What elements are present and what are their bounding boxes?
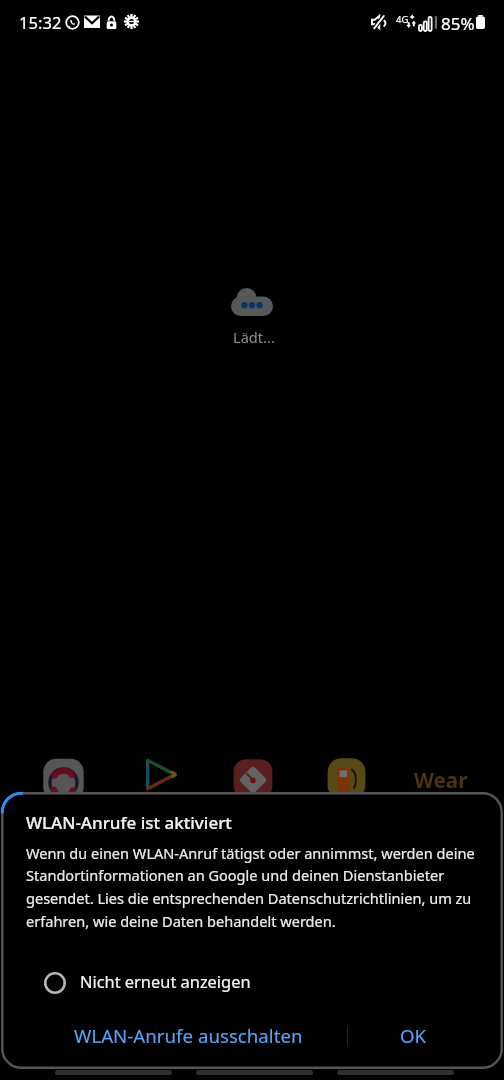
staticText: Wenn du einen WLAN-Anruf tätigst oder an… xyxy=(26,843,496,931)
staticText: Wear xyxy=(414,766,468,794)
staticText: OK xyxy=(400,1023,427,1048)
staticText: WLAN-Anrufe ausschalten xyxy=(74,1023,303,1048)
button[interactable]: OK xyxy=(346,1011,481,1059)
staticText: Lädt... xyxy=(233,327,275,347)
button[interactable]: WLAN-Anrufe ausschalten xyxy=(25,1011,351,1059)
staticText: 85% xyxy=(441,12,475,35)
staticText: 15:32 xyxy=(19,11,62,34)
staticText: Nicht erneut anzeigen xyxy=(80,970,251,992)
staticText: 4G xyxy=(396,13,409,26)
button[interactable]: Nicht erneut anzeigen xyxy=(1,962,503,1000)
staticText: WLAN-Anrufe ist aktiviert xyxy=(26,811,232,834)
